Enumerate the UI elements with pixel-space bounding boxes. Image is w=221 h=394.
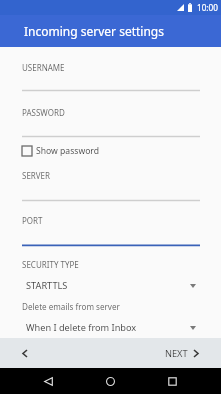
button[interactable]: NEXT	[165, 347, 198, 360]
button[interactable]: Recent apps	[159, 368, 185, 394]
staticText: SECURITY TYPE	[22, 259, 79, 270]
staticText: When I delete from Inbox	[26, 321, 137, 334]
button[interactable]: Home	[97, 368, 123, 394]
staticText: Show password	[36, 145, 100, 157]
button[interactable]: STARTTLS	[26, 279, 196, 292]
button[interactable]: Previous	[13, 341, 37, 365]
staticText: PASSWORD	[22, 107, 65, 118]
button[interactable]: Back	[35, 368, 61, 394]
staticText: STARTTLS	[26, 279, 68, 292]
button[interactable]	[22, 209, 200, 248]
button[interactable]: When I delete from Inbox	[26, 321, 196, 334]
staticText: USERNAME	[22, 62, 65, 73]
button[interactable]	[22, 101, 200, 140]
staticText: Incoming server settings	[24, 23, 164, 39]
button[interactable]	[22, 56, 200, 94]
button[interactable]: Show password	[21, 144, 101, 158]
staticText: SERVER	[22, 170, 51, 181]
button[interactable]	[22, 164, 200, 204]
staticText: Delete emails from server	[22, 301, 120, 312]
staticText: NEXT	[165, 347, 188, 360]
staticText: 10:00	[197, 2, 218, 13]
staticText: PORT	[22, 215, 43, 226]
